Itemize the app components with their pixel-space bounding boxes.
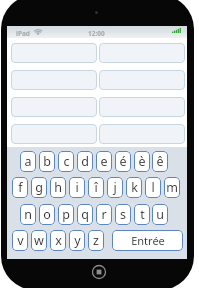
button[interactable]: n [20,204,36,225]
button[interactable]: h [50,177,66,198]
button[interactable] [11,43,97,63]
button[interactable]: u [152,204,168,225]
staticText: v [17,232,24,249]
button[interactable]: è [134,151,150,172]
staticText: Entrée [131,233,165,248]
staticText: h [54,179,62,196]
staticText: e [100,153,108,170]
button[interactable]: o [39,204,55,225]
staticText: î [94,179,98,196]
button[interactable] [99,70,185,90]
button[interactable]: f [12,177,28,198]
button[interactable]: ê [152,151,168,172]
button[interactable]: l [145,177,161,198]
button[interactable]: x [50,230,66,251]
button[interactable]: s [115,204,131,225]
button[interactable]: a [20,151,36,172]
staticText: l [151,179,155,196]
button[interactable]: v [12,230,28,251]
button[interactable] [99,43,185,63]
staticText: q [81,206,89,223]
button[interactable]: w [31,230,47,251]
staticText: j [113,179,117,196]
button[interactable] [11,124,97,144]
staticText: p [62,206,70,223]
button[interactable]: c [58,151,74,172]
button[interactable]: t [134,204,150,225]
staticText: è [138,153,146,170]
button[interactable]: d [77,151,93,172]
staticText: k [131,179,138,196]
staticText: c [63,153,70,170]
button[interactable] [11,97,97,117]
staticText: é [119,153,127,170]
staticText: y [74,232,81,249]
button[interactable]: b [39,151,55,172]
button[interactable]: Entrée [112,230,183,251]
button[interactable] [11,70,97,90]
staticText: n [24,206,32,223]
button[interactable]: j [107,177,123,198]
staticText: s [120,206,126,223]
button[interactable]: q [77,204,93,225]
staticText: b [43,153,51,170]
staticText: g [35,179,43,196]
button[interactable] [99,124,185,144]
staticText: a [24,153,32,170]
staticText: 12:00 [88,29,105,38]
staticText: x [55,232,62,249]
staticText: f [18,179,23,196]
staticText: i [75,179,79,196]
button[interactable]: z [88,230,104,251]
button[interactable]: é [115,151,131,172]
staticText: t [140,206,145,223]
button[interactable]: k [126,177,142,198]
button[interactable] [99,97,185,117]
staticText: o [43,206,51,223]
button[interactable]: i [69,177,85,198]
button[interactable]: Home [91,264,107,280]
staticText: u [156,206,164,223]
staticText: d [81,153,89,170]
staticText: ê [156,153,164,170]
staticText: w [34,232,44,249]
staticText: z [93,232,99,249]
button[interactable]: p [58,204,74,225]
button[interactable]: r [96,204,112,225]
button[interactable]: î [88,177,104,198]
button[interactable]: g [31,177,47,198]
staticText: m [166,179,178,196]
button[interactable]: e [96,151,112,172]
button[interactable]: m [164,177,180,198]
staticText: iPad [16,29,30,38]
staticText: r [101,206,107,223]
button[interactable]: y [69,230,85,251]
